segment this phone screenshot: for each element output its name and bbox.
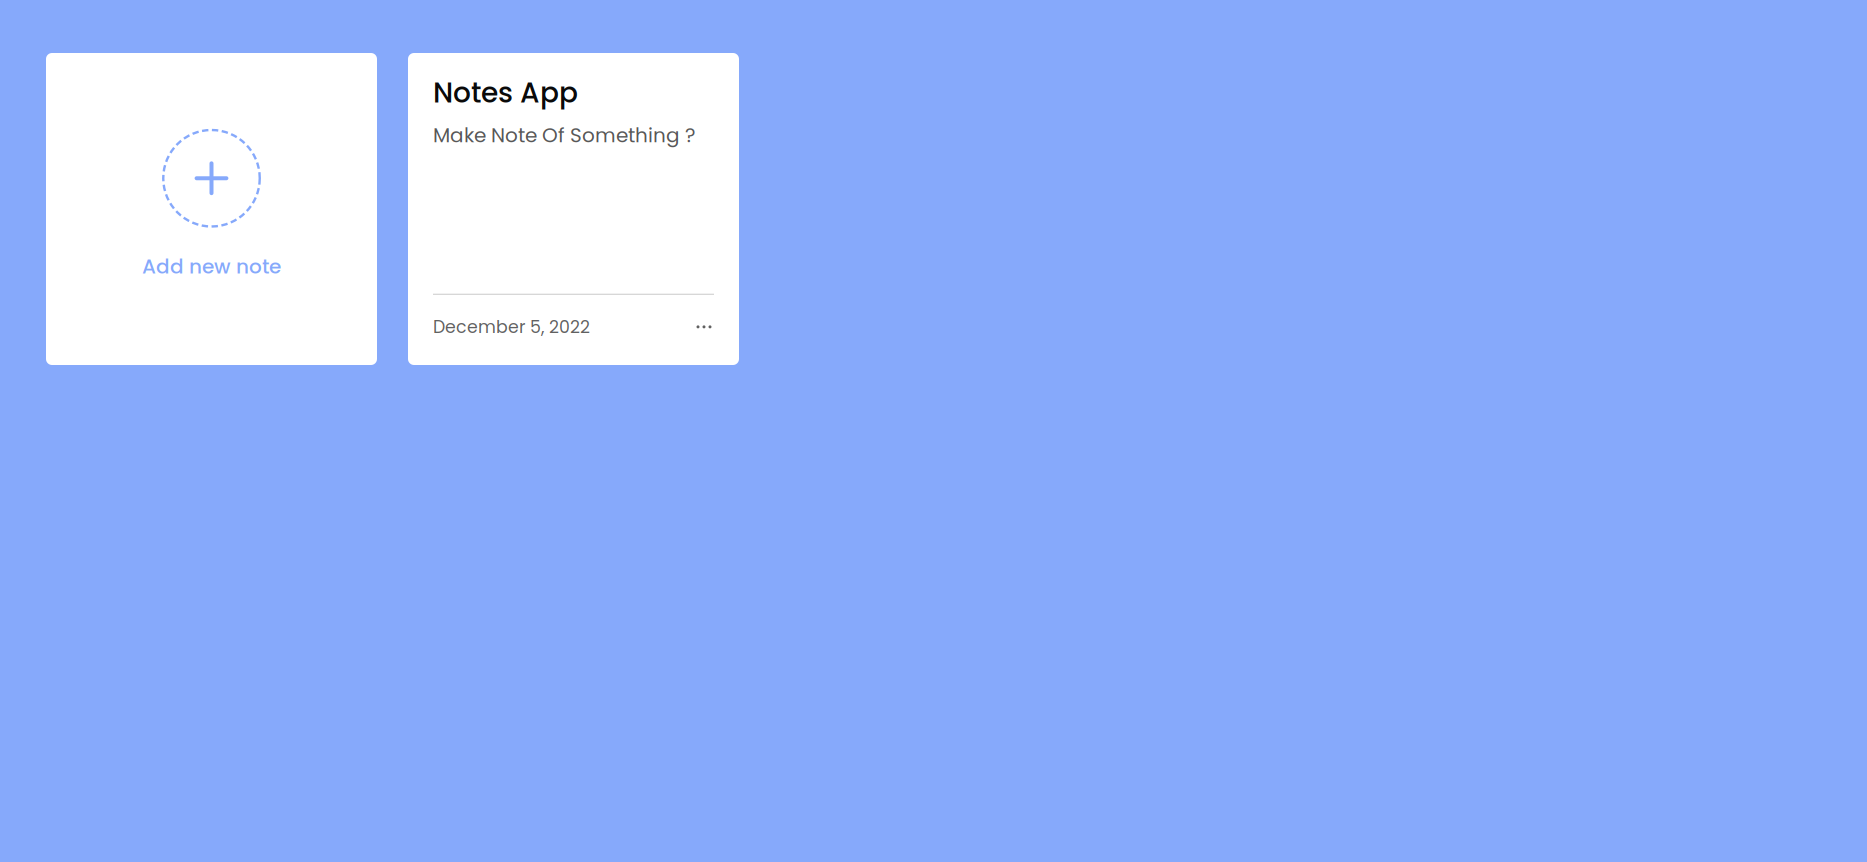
staticText: December 5, 2022 xyxy=(433,315,590,339)
staticText: Notes App xyxy=(433,73,578,112)
button[interactable]: Add new note xyxy=(46,53,377,365)
button[interactable]: More options xyxy=(694,319,714,335)
staticText: Add new note xyxy=(142,252,281,280)
button[interactable]: Notes App xyxy=(408,53,739,365)
staticText: Make Note Of Something ? xyxy=(433,121,695,149)
